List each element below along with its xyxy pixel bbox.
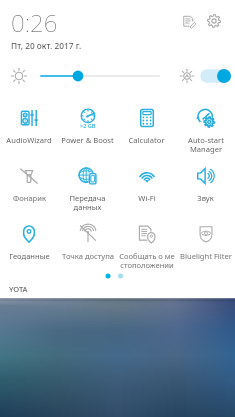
button[interactable]: Передача данных (58, 162, 117, 220)
button[interactable]: Settings (202, 9, 226, 33)
staticText: Фонарик (13, 193, 46, 203)
staticText: Сообщать о ме стоположении (119, 251, 175, 270)
staticText: 0:26 (11, 6, 58, 39)
button[interactable]: Bluelight Filter (176, 220, 235, 278)
staticText: Bluelight Filter (180, 251, 232, 261)
button[interactable]: AudioWizard (0, 104, 58, 162)
button[interactable]: Auto-start Manager (176, 104, 235, 162)
staticText: AudioWizard (6, 135, 52, 145)
staticText: YOTA (9, 284, 28, 294)
button[interactable]: Фонарик (0, 162, 58, 220)
button[interactable]: Edit quick settings (177, 9, 201, 33)
button[interactable]: Сообщать о ме стоположении (117, 220, 176, 278)
staticText: >2 GB (80, 122, 96, 129)
button[interactable]: Точка доступа (58, 220, 117, 278)
staticText: Auto-start Manager (188, 135, 224, 154)
staticText: Геоданные (9, 251, 50, 261)
button[interactable]: Геоданные (0, 220, 58, 278)
button[interactable]: >2 GB (58, 104, 117, 162)
button[interactable]: Звук (176, 162, 235, 220)
staticText: Звук (197, 193, 214, 203)
staticText: Wi-Fi (138, 193, 156, 203)
staticText: Power & Boost (61, 135, 114, 145)
staticText: Calculator (128, 135, 165, 145)
staticText: Передача данных (69, 193, 106, 212)
staticText: Пт, 20 окт. 2017 г. (11, 40, 82, 51)
button[interactable]: Calculator (117, 104, 176, 162)
button[interactable]: Wi-Fi (117, 162, 176, 220)
staticText: Точка доступа (62, 251, 114, 261)
